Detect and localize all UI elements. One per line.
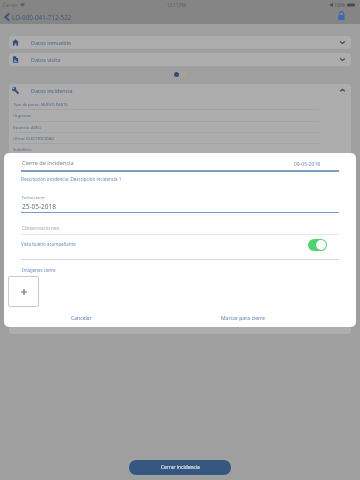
staticText: Estancia: ASEO	[13, 125, 42, 131]
staticText: 25-05-2018	[22, 202, 56, 211]
staticText: Fecha cierre	[22, 195, 45, 200]
staticText: Observaciones	[22, 224, 60, 231]
staticText: LO-000-041-712-522	[12, 13, 72, 22]
button[interactable]: Add image	[8, 276, 39, 307]
staticText: Cancelar	[71, 315, 92, 322]
staticText: Datos inmueble	[31, 39, 72, 46]
staticText: Subofício:	[13, 147, 32, 153]
button[interactable]: Cancelar	[67, 315, 96, 322]
staticText: Descripción incidencia: Descripción inci…	[21, 176, 122, 182]
button[interactable]: Marcar para cierre	[217, 315, 269, 322]
staticText: Cierre de incidencia	[22, 159, 74, 167]
staticText: Marcar para cierre	[221, 315, 265, 322]
button[interactable]: LO-000-041-712-522	[4, 10, 72, 24]
staticText: Oficio: ELECTRICIDAD	[13, 136, 55, 142]
button[interactable]	[9, 36, 351, 49]
button[interactable]: Lock	[337, 11, 346, 23]
staticText: Urgencia:	[13, 113, 32, 119]
staticText: Imágenes cierre	[22, 267, 56, 273]
staticText: 09-05-2018	[294, 161, 321, 168]
staticText: Carrier	[3, 2, 18, 8]
staticText: Visto bueno acompañante	[21, 241, 76, 247]
staticText: Datos incidencia	[31, 87, 73, 94]
other: Visto bueno toggle	[308, 239, 327, 251]
staticText: Cerrar incidencia	[161, 464, 200, 471]
staticText: 100%	[334, 2, 346, 8]
button[interactable]	[9, 53, 351, 66]
button[interactable]: Cerrar incidencia	[129, 460, 231, 475]
button[interactable]: Visto bueno acompañante	[21, 236, 339, 254]
staticText: Tipo de parte: NUEVO PARTE	[13, 102, 68, 108]
staticText: Datos visita	[31, 56, 61, 63]
staticText: 12:11 PM	[167, 2, 187, 8]
